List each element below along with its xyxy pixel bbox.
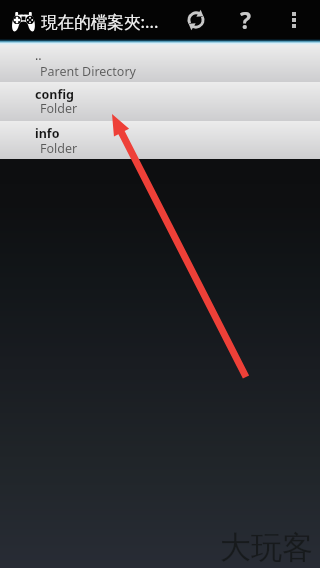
staticText: Folder xyxy=(40,140,78,157)
staticText: 大玩客 xyxy=(220,528,313,567)
button[interactable]: Refresh xyxy=(174,0,218,39)
staticText: ? xyxy=(240,4,251,35)
button[interactable]: Help xyxy=(223,0,267,39)
staticText: 現在的檔案夾:... xyxy=(41,10,171,33)
staticText: config xyxy=(35,86,74,103)
staticText: .. xyxy=(35,47,42,64)
button[interactable]: More options xyxy=(272,0,316,39)
staticText: Folder xyxy=(40,100,78,117)
staticText: Parent Directory xyxy=(40,63,136,80)
staticText: info xyxy=(35,125,60,142)
button[interactable]: Gamepad app icon xyxy=(4,0,38,39)
button[interactable]: info xyxy=(0,121,320,159)
button[interactable]: config xyxy=(0,82,320,121)
button[interactable]: .. xyxy=(0,45,320,82)
